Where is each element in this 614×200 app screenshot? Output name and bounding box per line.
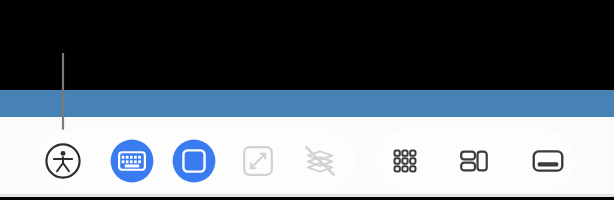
button[interactable]: Hide overlays [297,138,343,184]
button[interactable]: Accessibility [40,138,86,184]
button[interactable]: Switch control [235,138,281,184]
button[interactable]: Split view [452,138,498,184]
button[interactable]: Pointer control [171,138,217,184]
button[interactable]: Keyboard [109,138,155,184]
button[interactable]: Dock panel [525,138,571,184]
button[interactable]: App grid [382,138,428,184]
